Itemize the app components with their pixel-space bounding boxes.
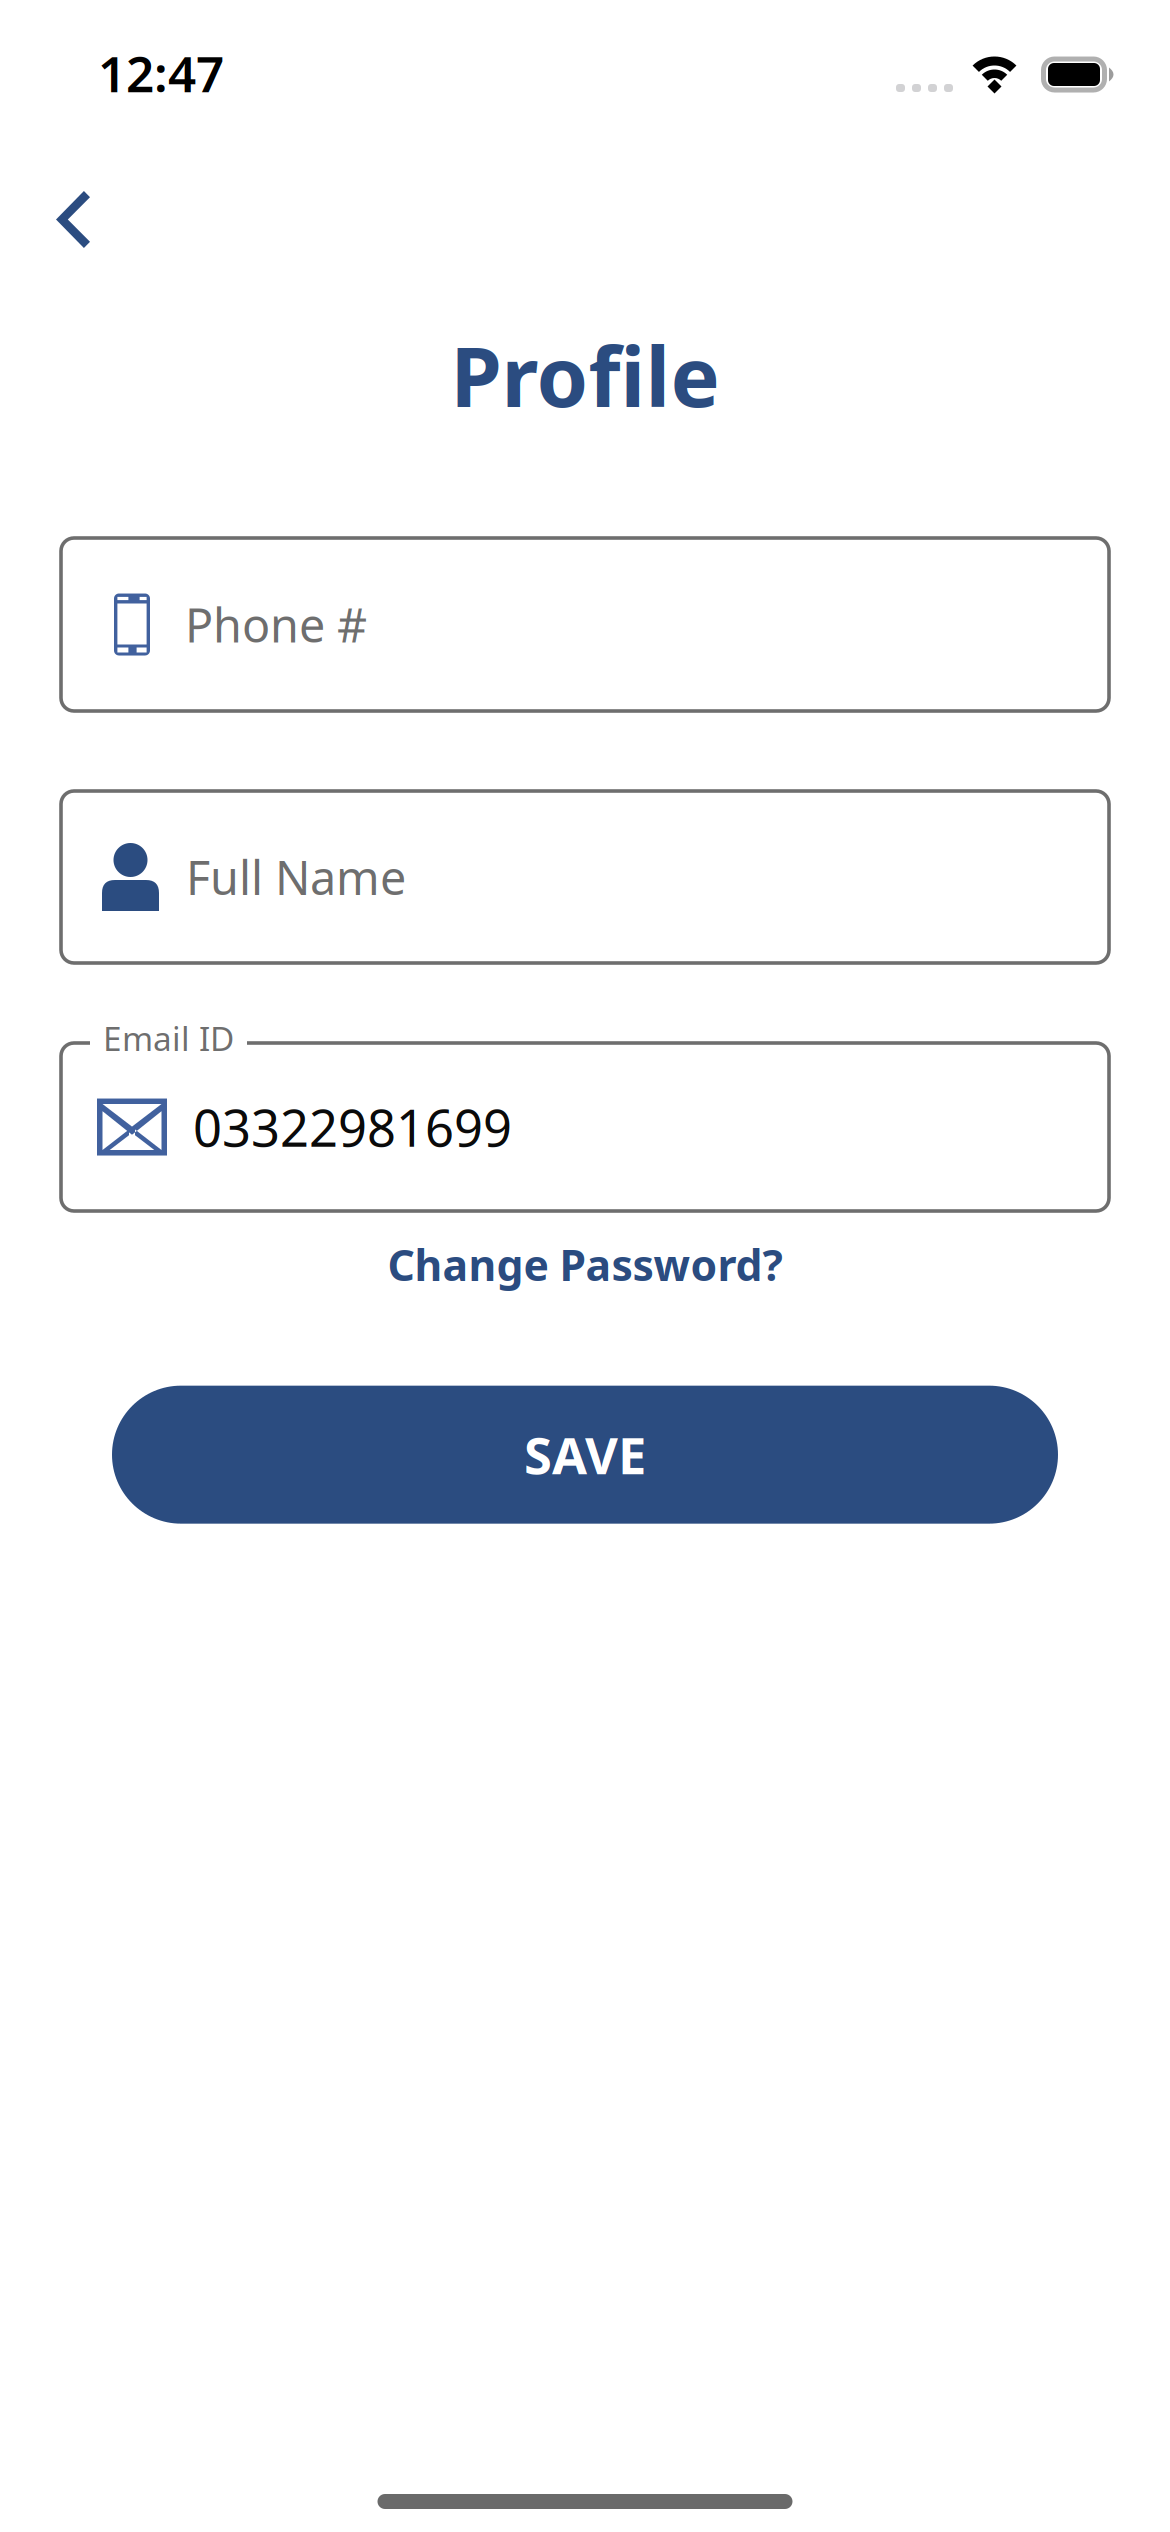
- button[interactable]: 03322981699: [61, 1043, 1109, 1211]
- staticText: Change Password?: [387, 1236, 782, 1293]
- staticText: Full Name: [186, 846, 406, 908]
- button[interactable]: Back: [0, 126, 120, 270]
- staticText: Email ID: [103, 1016, 234, 1060]
- button[interactable]: Change Password?: [367, 1226, 802, 1303]
- staticText: Phone #: [185, 593, 367, 655]
- staticText: 03322981699: [193, 1093, 512, 1161]
- staticText: 12:47: [98, 40, 224, 106]
- staticText: SAVE: [524, 1421, 646, 1488]
- button[interactable]: Phone #: [61, 538, 1109, 711]
- staticText: Profile: [450, 320, 719, 430]
- button[interactable]: SAVE: [112, 1386, 1058, 1524]
- button[interactable]: Full Name: [61, 791, 1109, 963]
